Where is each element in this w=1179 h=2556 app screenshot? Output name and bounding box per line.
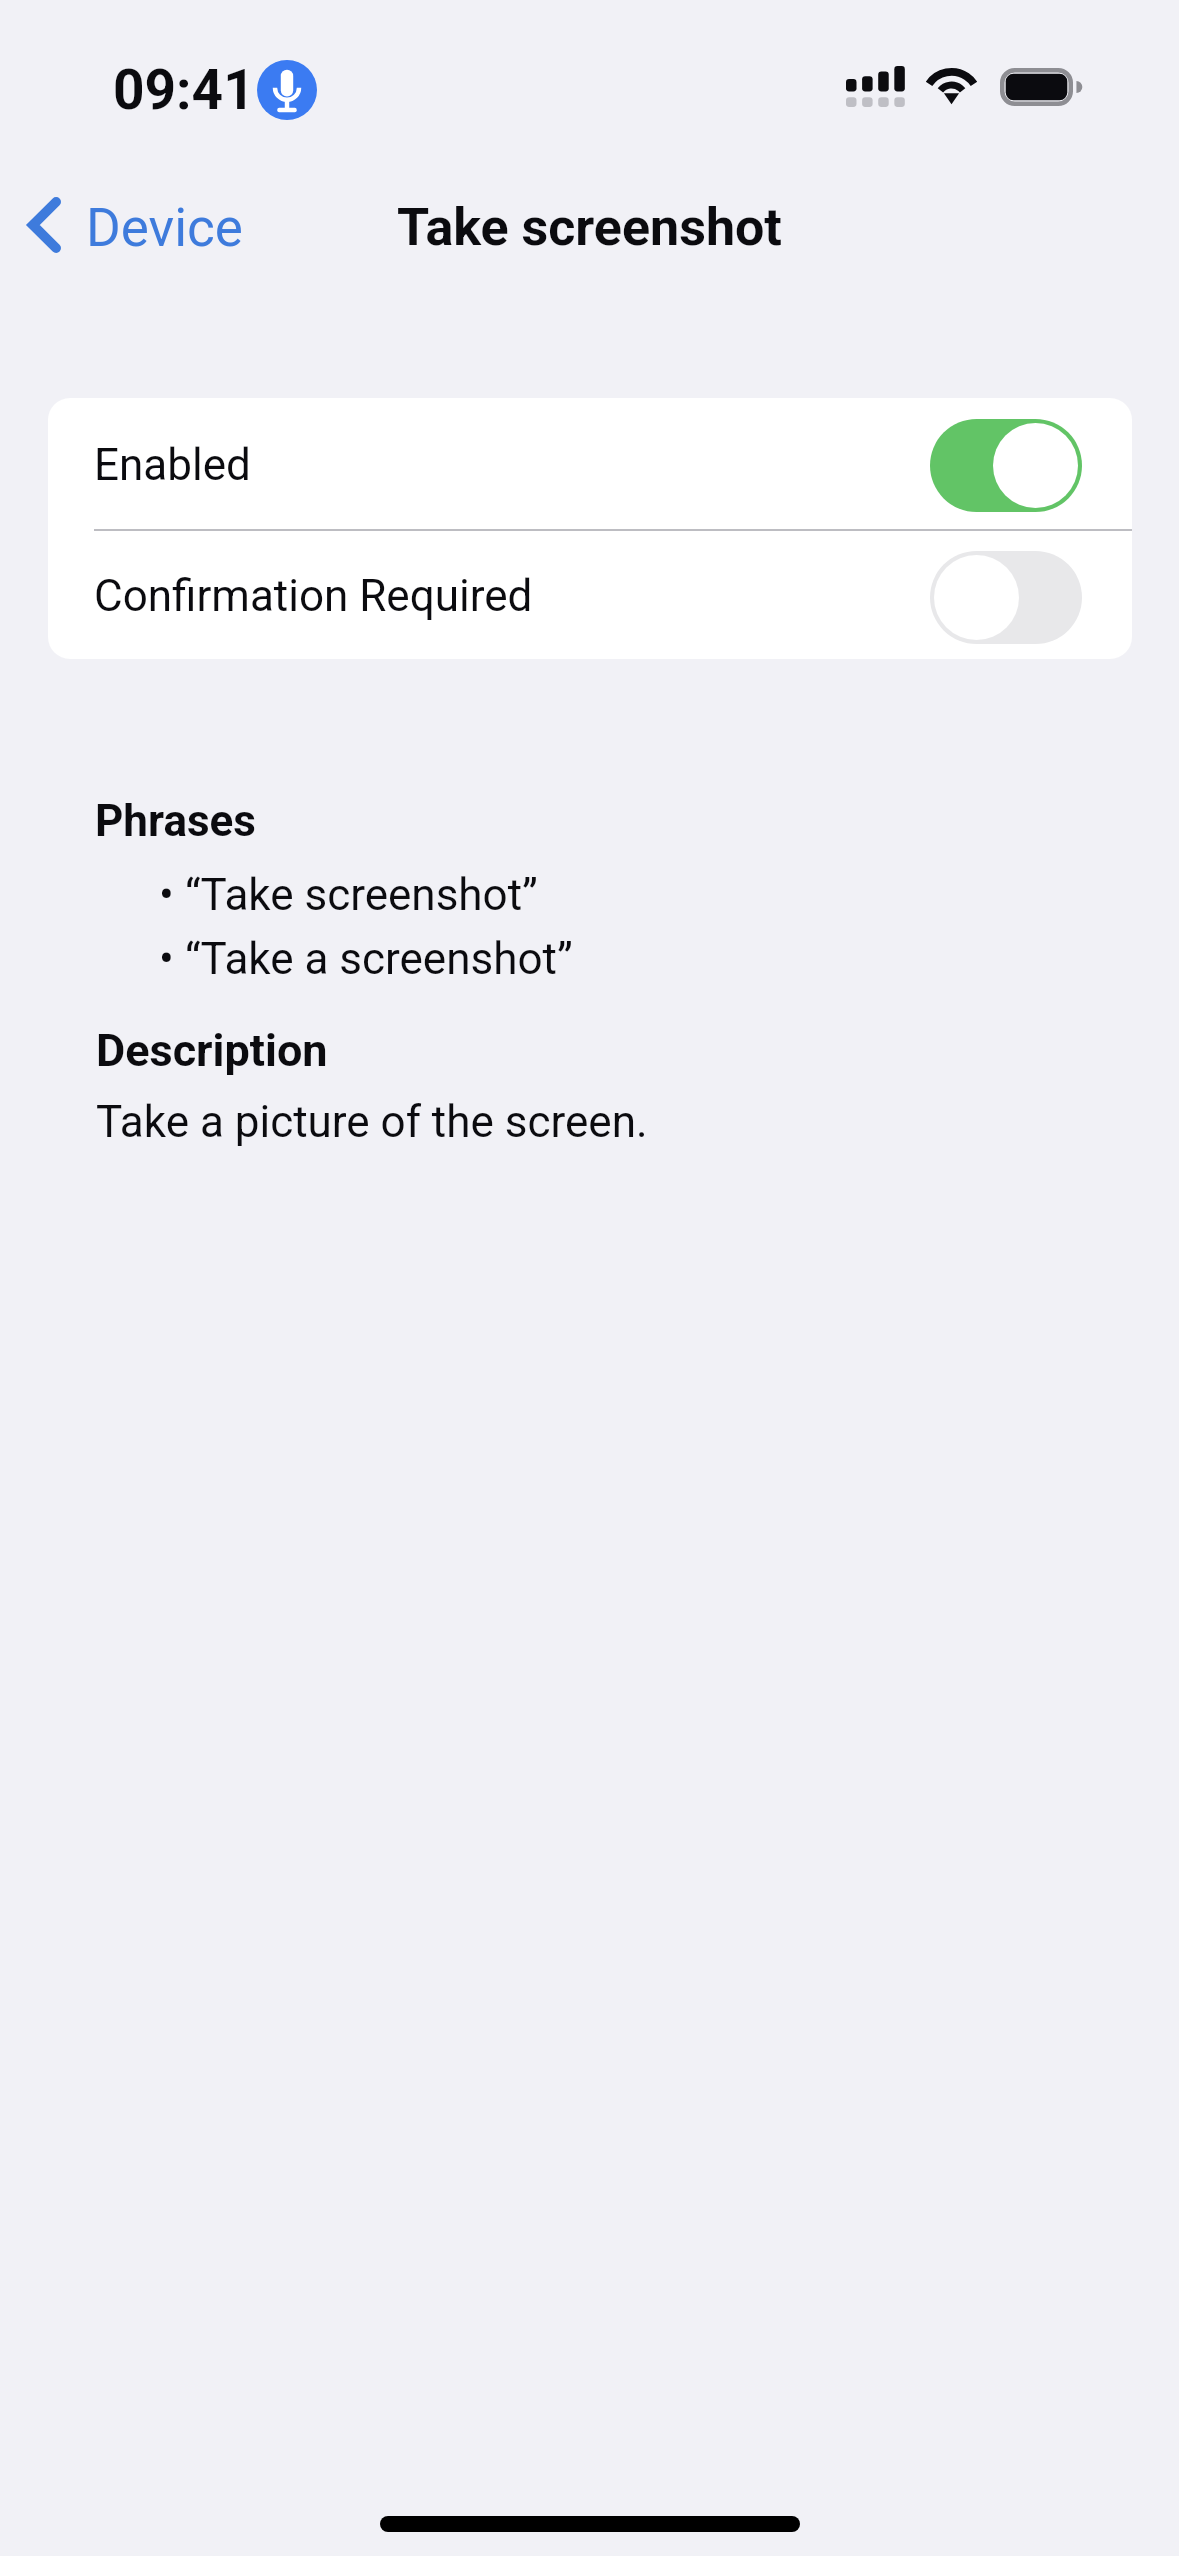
staticText: Take screenshot xyxy=(397,197,782,258)
staticText: • xyxy=(159,933,174,985)
button[interactable]: Confirmation Required xyxy=(48,531,1132,659)
other: Back xyxy=(28,197,61,253)
button[interactable]: Off xyxy=(930,551,1082,644)
staticText: Description xyxy=(96,1024,328,1077)
staticText: Enabled xyxy=(94,439,251,491)
button[interactable]: Enabled xyxy=(48,398,1132,529)
staticText: “Take a screenshot” xyxy=(185,933,573,985)
button[interactable]: Back xyxy=(14,188,263,262)
staticText: 09:41 xyxy=(113,58,255,122)
staticText: Device xyxy=(86,197,243,259)
staticText: Phrases xyxy=(95,795,256,847)
staticText: Confirmation Required xyxy=(94,570,533,622)
staticText: Take a picture of the screen. xyxy=(96,1096,648,1148)
staticText: “Take screenshot” xyxy=(185,869,538,921)
other: Voice control active xyxy=(257,60,317,120)
button[interactable]: On xyxy=(930,419,1082,512)
staticText: • xyxy=(159,869,174,921)
